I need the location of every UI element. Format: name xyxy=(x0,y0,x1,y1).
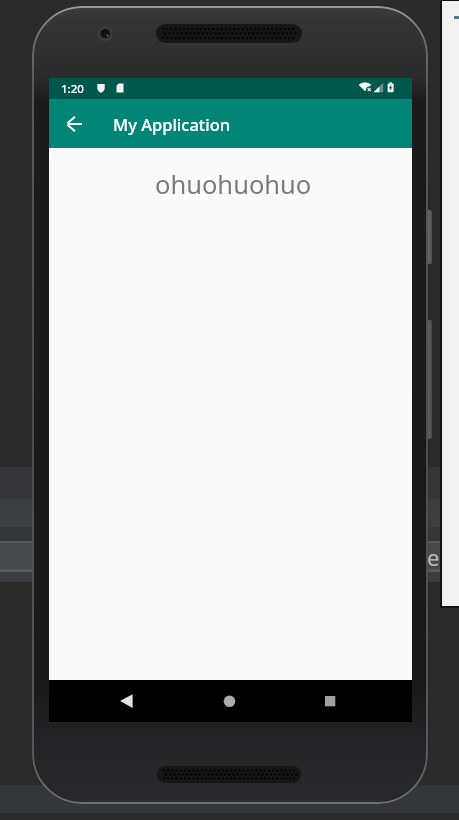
staticText: My Application xyxy=(113,113,231,135)
staticText: ed xyxy=(427,542,453,572)
button[interactable] xyxy=(96,680,156,722)
staticText: ohuohuohuo xyxy=(155,167,312,202)
button[interactable] xyxy=(427,210,432,264)
button[interactable] xyxy=(199,680,259,722)
button[interactable] xyxy=(57,106,103,141)
button[interactable] xyxy=(300,680,360,722)
staticText: 1:20 xyxy=(61,81,84,97)
button[interactable] xyxy=(427,320,432,439)
